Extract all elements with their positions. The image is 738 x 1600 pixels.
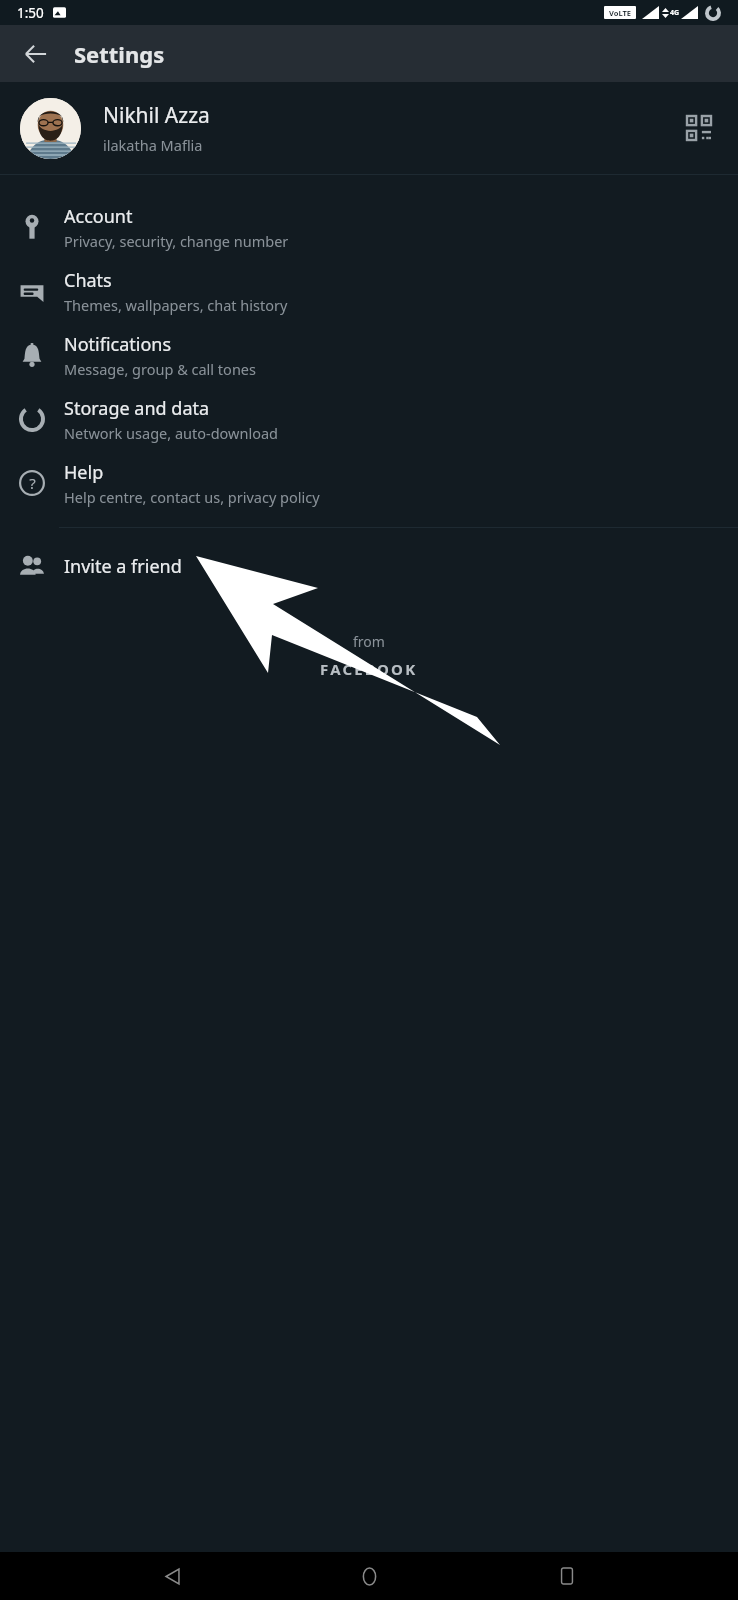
staticText: VoLTE	[609, 8, 631, 18]
staticText: Invite a friend	[64, 554, 182, 579]
button[interactable]: Home	[343, 1552, 395, 1600]
staticText: Account	[64, 204, 133, 229]
button[interactable]: QR code	[680, 109, 718, 147]
staticText: Chats	[64, 268, 112, 293]
staticText: Privacy, security, change number	[64, 231, 289, 251]
button[interactable]: Recent apps	[541, 1552, 593, 1600]
staticText: 4G	[670, 8, 680, 18]
staticText: Nikhil Azza	[103, 101, 210, 130]
staticText: from	[353, 632, 385, 651]
button[interactable]: Account	[0, 195, 738, 259]
button[interactable]: Chats	[0, 259, 738, 323]
button[interactable]: Back	[146, 1552, 198, 1600]
staticText: Help	[64, 460, 104, 485]
staticText: Network usage, auto-download	[64, 423, 278, 443]
staticText: Settings	[74, 39, 165, 69]
button[interactable]: Invite a friend	[0, 538, 738, 594]
staticText: ilakatha Maflia	[103, 135, 203, 155]
staticText: 1:50	[17, 4, 44, 22]
staticText: Notifications	[64, 332, 172, 357]
button[interactable]: ?	[0, 451, 738, 515]
staticText: Storage and data	[64, 396, 210, 421]
button[interactable]: Nikhil Azza	[0, 82, 738, 174]
button[interactable]: Storage and data	[0, 387, 738, 451]
staticText: ?	[29, 473, 36, 493]
staticText: Message, group & call tones	[64, 359, 256, 379]
button[interactable]: Back	[12, 30, 60, 78]
staticText: FACEBOOK	[320, 659, 418, 679]
staticText: Help centre, contact us, privacy policy	[64, 487, 320, 507]
button[interactable]: Notifications	[0, 323, 738, 387]
staticText: Themes, wallpapers, chat history	[64, 295, 288, 315]
